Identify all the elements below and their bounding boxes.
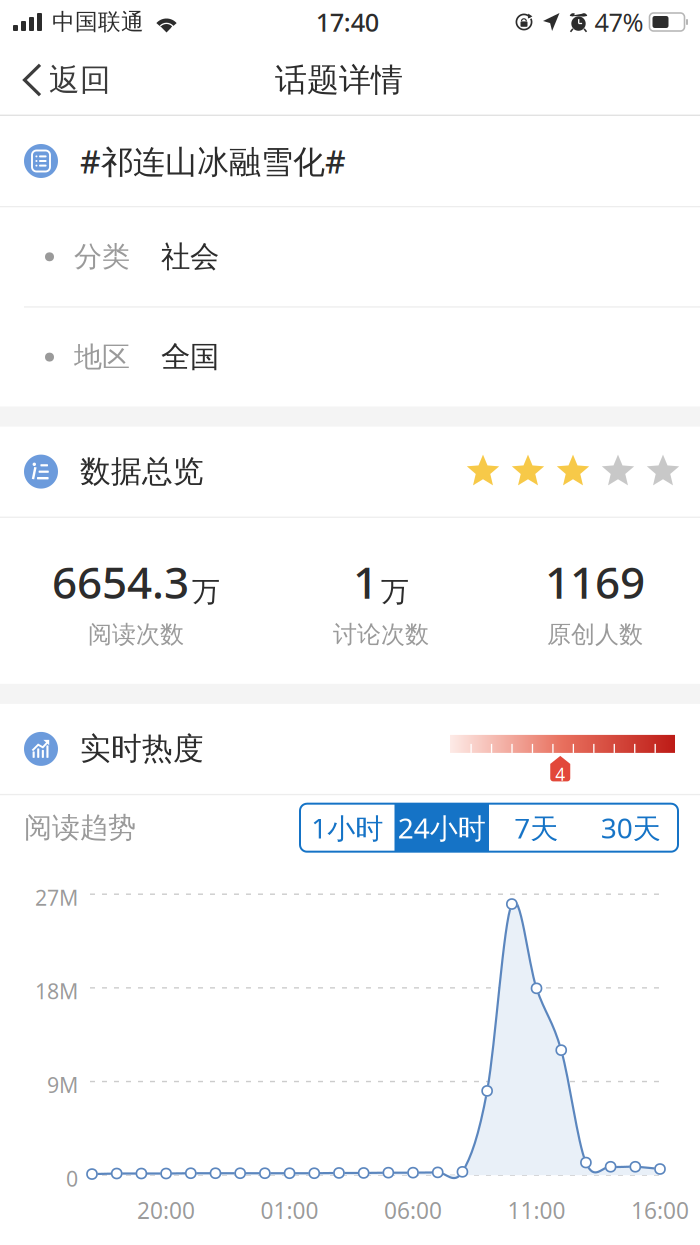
staticText: 讨论次数 [333, 620, 429, 649]
staticText: 9M [47, 1070, 78, 1099]
button[interactable]: 24小时 [394, 804, 489, 852]
staticText: 27M [35, 883, 78, 911]
staticText: 地区 [74, 340, 130, 374]
staticText: 16:00 [631, 1195, 689, 1225]
staticText: 数据总览 [80, 453, 204, 490]
button[interactable]: #祁连山冰融雪化# [0, 116, 700, 206]
staticText: #祁连山冰融雪化# [80, 140, 346, 182]
staticText: 24小时 [398, 809, 486, 846]
staticText: 7天 [514, 809, 558, 846]
staticText: 17:40 [316, 5, 379, 39]
button[interactable]: 7天 [489, 804, 583, 852]
staticText: 社会 [161, 239, 219, 275]
button[interactable]: 返回 [0, 52, 125, 108]
staticText: 返回 [49, 61, 111, 99]
staticText: 06:00 [384, 1195, 442, 1225]
staticText: 01:00 [261, 1195, 319, 1225]
staticText: 实时热度 [80, 730, 204, 768]
staticText: 阅读次数 [88, 620, 184, 649]
button[interactable]: 30天 [583, 804, 678, 852]
staticText: 20:00 [137, 1195, 195, 1225]
staticText: 6654.3 [52, 552, 189, 611]
staticText: 1 [353, 552, 378, 611]
staticText: 万 [192, 574, 220, 609]
staticText: 11:00 [507, 1195, 565, 1225]
staticText: 话题详情 [275, 60, 403, 100]
staticText: 分类 [74, 240, 130, 274]
staticText: 1169 [545, 552, 645, 611]
staticText: 4 [555, 762, 565, 785]
staticText: 全国 [161, 339, 219, 375]
staticText: 47% [594, 5, 643, 39]
staticText: 万 [381, 574, 409, 609]
button[interactable]: 1小时 [300, 804, 394, 852]
staticText: 1小时 [311, 809, 383, 846]
staticText: 0 [66, 1164, 78, 1192]
staticText: 中国联通 [52, 8, 144, 36]
staticText: 18M [35, 977, 78, 1005]
staticText: 30天 [601, 809, 661, 846]
staticText: 原创人数 [547, 620, 643, 649]
staticText: 阅读趋势 [24, 810, 136, 845]
